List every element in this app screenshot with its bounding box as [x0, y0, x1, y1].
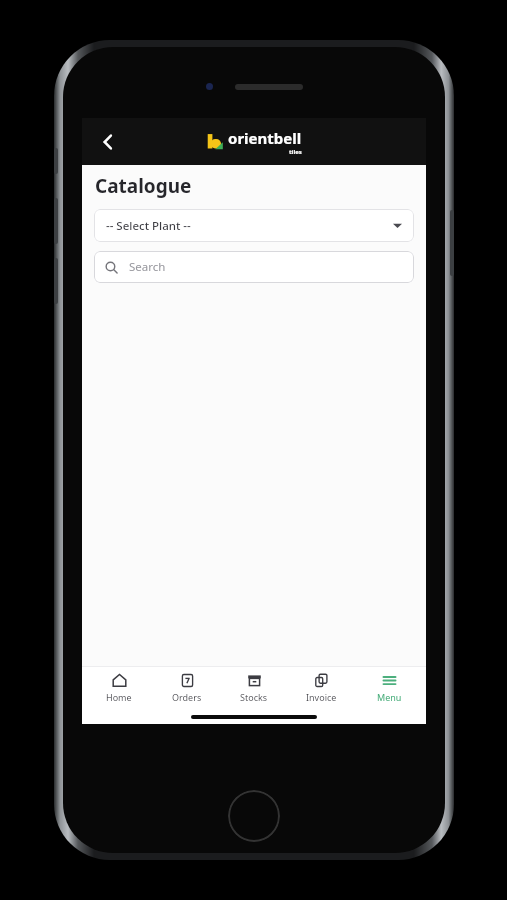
- button[interactable]: Home: [89, 669, 149, 707]
- staticText: -- Select Plant --: [106, 218, 191, 234]
- button[interactable]: Search: [94, 251, 414, 283]
- staticText: Search: [129, 259, 166, 275]
- staticText: Catalogue: [95, 173, 192, 199]
- button[interactable]: Back: [90, 124, 126, 160]
- button[interactable]: Stocks: [224, 669, 284, 707]
- staticText: orientbell: [228, 128, 302, 148]
- staticText: Stocks: [240, 691, 268, 703]
- staticText: Invoice: [306, 691, 337, 703]
- staticText: Menu: [377, 691, 402, 703]
- button[interactable]: -- Select Plant --: [94, 209, 414, 242]
- staticText: Home: [106, 691, 132, 703]
- button[interactable]: Invoice: [291, 669, 351, 707]
- staticText: Orders: [172, 691, 202, 703]
- button[interactable]: Orders: [157, 669, 217, 707]
- staticText: tiles: [289, 148, 302, 156]
- button[interactable]: Menu: [359, 669, 419, 707]
